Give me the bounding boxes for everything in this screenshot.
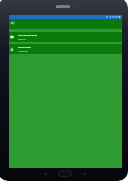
staticText: Import wallet xyxy=(18,46,31,49)
staticText: Produce xyxy=(18,38,26,41)
staticText: Customize xyxy=(18,50,28,53)
button[interactable]: Import wallet xyxy=(9,44,122,54)
button[interactable]: Back xyxy=(9,19,17,27)
button[interactable]: New personal wallet xyxy=(9,32,122,42)
staticText: SAMSUNG xyxy=(56,5,70,9)
staticText: New personal wallet xyxy=(18,34,38,37)
